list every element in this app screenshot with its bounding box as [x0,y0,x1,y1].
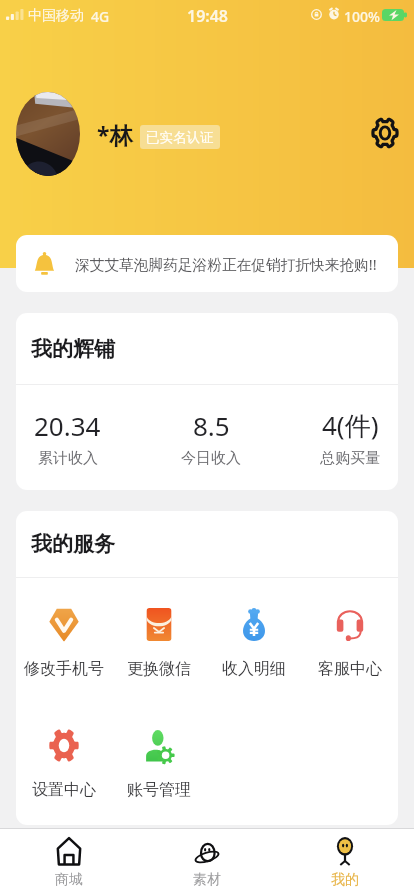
staticText: 4(件) [322,407,379,443]
button[interactable]: 我的辉铺 [31,313,398,384]
staticText: 20.34 [34,408,101,443]
staticText: 19:48 [187,5,229,27]
staticText: 已实名认证 [146,129,214,146]
staticText: 收入明细 [222,659,286,679]
button[interactable]: 素材 [138,829,276,896]
button[interactable]: 我的 [276,829,414,896]
button[interactable]: 商城 [0,829,138,896]
button[interactable]: 账号管理 [111,728,206,800]
staticText: 我的 [331,871,359,889]
staticText: 修改手机号 [24,659,104,679]
staticText: 中国移动 [28,7,84,25]
staticText: *林 [97,119,133,150]
button[interactable]: 设置中心 [16,728,111,800]
staticText: 设置中心 [32,780,96,800]
staticText: 账号管理 [127,780,191,800]
staticText: 100% [344,7,380,26]
button[interactable]: 我的服务 [31,511,398,577]
staticText: 总购买量 [320,449,380,468]
button[interactable]: 8.5 [181,408,241,468]
button[interactable]: 20.34 [34,408,101,468]
staticText: 我的服务 [31,531,115,557]
staticText: 8.5 [193,408,230,443]
button[interactable]: 深艾艾草泡脚药足浴粉正在促销打折快来抢购!! [16,235,398,292]
staticText: 商城 [55,871,83,889]
staticText: 今日收入 [181,449,241,468]
staticText: 累计收入 [38,449,98,468]
button[interactable]: Avatar [16,92,80,176]
staticText: 4G [91,7,110,26]
staticText: 深艾艾草泡脚药足浴粉正在促销打折快来抢购!! [75,254,377,274]
button[interactable]: 已实名认证 [140,125,220,149]
button[interactable]: 更换微信 [111,607,206,679]
staticText: 更换微信 [127,659,191,679]
staticText: 客服中心 [318,659,382,679]
staticText: 素材 [193,871,221,889]
button[interactable]: 修改手机号 [16,607,111,679]
button[interactable]: Settings [366,114,404,152]
button[interactable]: 客服中心 [302,607,398,679]
button[interactable]: 4(件) [320,407,380,468]
button[interactable]: 收入明细 [206,607,302,679]
staticText: 我的辉铺 [31,336,115,362]
